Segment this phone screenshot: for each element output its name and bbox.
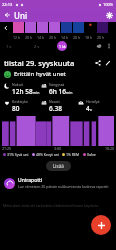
staticText: 20 h (25, 35, 33, 40)
staticText: 4 (86, 104, 90, 113)
staticText: 21:25 (2, 146, 11, 151)
staticText: 12 h (13, 35, 21, 40)
staticText: Nukuit (12, 82, 24, 87)
staticText: Unirapotti (18, 177, 43, 184)
staticText: Sängyssä (49, 82, 65, 87)
staticText: Lue viimeisen 30 päivän nukkumisesta kos… (18, 184, 109, 189)
staticText: 12h 58 (12, 87, 33, 96)
staticText: 14 h (61, 35, 69, 40)
staticText: Lisää (53, 163, 64, 169)
staticText: 80 (12, 104, 20, 113)
staticText: 2 v (34, 44, 40, 49)
staticText: 14 h (37, 35, 45, 40)
staticText: Keskisyke (12, 99, 28, 104)
staticText: 31% Syvä uni (7, 152, 29, 157)
button[interactable]: 20 h (49, 22, 61, 40)
button[interactable]: 14 h (61, 22, 73, 40)
button[interactable]: Share (93, 58, 103, 68)
button[interactable]: 20 h (97, 22, 109, 40)
staticText: Valve (87, 152, 96, 157)
staticText: 6.38 (49, 104, 62, 113)
button[interactable]: 12 h (13, 22, 25, 40)
staticText: Mittaukset eivät ole tarkoitettu lääketi… (3, 203, 100, 208)
button[interactable]: Previous week (0, 22, 12, 34)
button[interactable]: Lisää (46, 161, 71, 171)
staticText: 20 h (73, 35, 81, 40)
staticText: 6h 16 (49, 87, 66, 96)
button[interactable]: 20 h (73, 22, 85, 40)
button[interactable]: Edit (103, 58, 113, 68)
staticText: 1% REM (66, 152, 80, 157)
button[interactable]: 2 v (30, 42, 44, 51)
staticText: 48% Kevyt uni (36, 152, 59, 157)
button[interactable]: More options (104, 41, 114, 51)
staticText: 100% (103, 2, 114, 7)
staticText: min (33, 90, 40, 95)
staticText: 3:00 (54, 146, 61, 151)
staticText: Nousit (49, 99, 60, 104)
staticText: tiistai 29. syyskuuta (4, 58, 75, 68)
staticText: 18 h (85, 35, 93, 40)
staticText: 1 kk (59, 44, 66, 49)
staticText: Erittäin hyvät unet (14, 70, 66, 78)
button[interactable]: 1 kk (57, 41, 67, 51)
button[interactable]: 18 h (85, 22, 97, 40)
staticText: Heräilyä (86, 99, 100, 104)
staticText: x (90, 107, 92, 112)
button[interactable]: 1 v (2, 42, 16, 51)
staticText: 1 v (6, 44, 12, 49)
button[interactable]: Add (91, 215, 111, 235)
staticText: min (66, 90, 73, 95)
button[interactable]: Unirapotti (0, 177, 116, 189)
button[interactable]: 20 h (25, 22, 37, 40)
staticText: 20 h (97, 35, 105, 40)
button[interactable]: 14 h (37, 22, 49, 40)
button[interactable]: Sync (94, 41, 104, 51)
staticText: 10:20 (105, 146, 114, 151)
staticText: 22:13 (2, 2, 13, 7)
button[interactable]: Back (0, 8, 14, 22)
button[interactable]: Settings (102, 8, 116, 22)
staticText: 20 h (49, 35, 57, 40)
staticText: Uni (14, 10, 28, 21)
